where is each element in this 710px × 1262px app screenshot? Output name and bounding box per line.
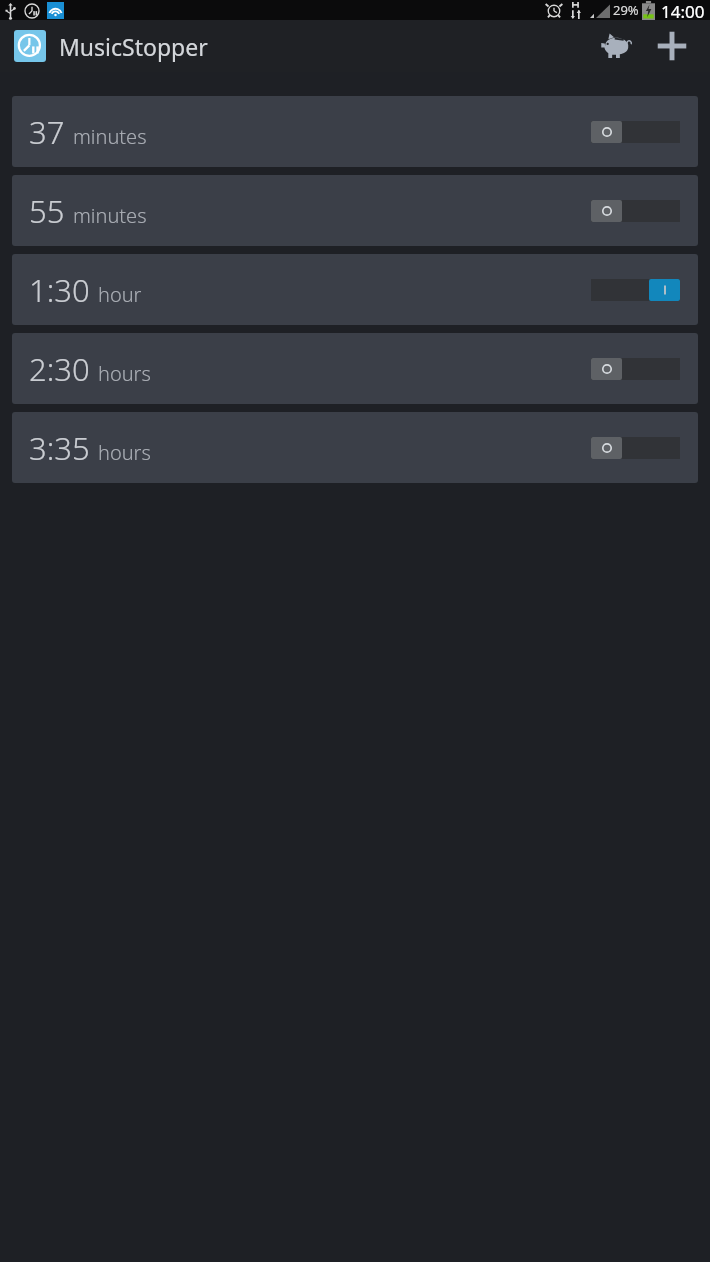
- staticText: minutes: [73, 202, 147, 229]
- button[interactable]: Timer off: [591, 121, 680, 143]
- button[interactable]: 2:30: [12, 333, 698, 404]
- staticText: MusicStopper: [59, 31, 208, 62]
- staticText: 14:00: [661, 0, 705, 20]
- button[interactable]: 55: [12, 175, 698, 246]
- staticText: 3:35: [29, 427, 90, 469]
- staticText: 37: [29, 111, 65, 153]
- staticText: 1:30: [29, 269, 90, 311]
- staticText: hours: [98, 439, 151, 466]
- button[interactable]: Donate: [588, 20, 644, 72]
- button[interactable]: Timer off: [591, 358, 680, 380]
- staticText: hour: [98, 281, 142, 308]
- staticText: 55: [29, 190, 65, 232]
- staticText: 2:30: [29, 348, 90, 390]
- staticText: minutes: [73, 123, 147, 150]
- button[interactable]: MusicStopper: [14, 30, 208, 62]
- button[interactable]: 37: [12, 96, 698, 167]
- button[interactable]: Add timer: [644, 20, 700, 72]
- staticText: 29%: [613, 1, 639, 19]
- button[interactable]: 3:35: [12, 412, 698, 483]
- button[interactable]: 1:30: [12, 254, 698, 325]
- button[interactable]: Timer off: [591, 200, 680, 222]
- button[interactable]: Timer off: [591, 437, 680, 459]
- button[interactable]: Timer on: [591, 279, 680, 301]
- staticText: hours: [98, 360, 151, 387]
